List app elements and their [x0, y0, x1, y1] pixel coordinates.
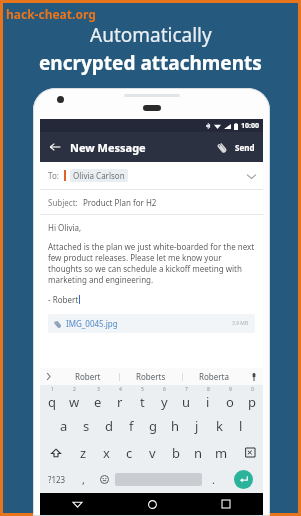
staticText: q — [48, 393, 56, 411]
staticText: k — [216, 417, 223, 435]
staticText: 7 — [185, 386, 188, 393]
button[interactable]: IMG_0045.jpg — [48, 314, 255, 333]
staticText: v — [149, 444, 156, 462]
button[interactable]: More suggestions — [40, 368, 56, 385]
button[interactable]: c — [118, 439, 141, 466]
button[interactable]: 2 — [63, 385, 86, 412]
button[interactable]: ?123 — [40, 466, 74, 493]
button[interactable]: g — [142, 412, 164, 439]
staticText: Olivia Carlson — [73, 170, 125, 181]
button[interactable]: . — [202, 466, 224, 493]
staticText: l — [239, 417, 243, 435]
staticText: - Robert — [48, 294, 79, 305]
button[interactable]: Enter — [224, 466, 263, 493]
button[interactable]: 6 — [153, 385, 175, 412]
button[interactable]: Expand recipients — [239, 164, 263, 188]
staticText: u — [182, 393, 191, 411]
staticText: ?123 — [48, 474, 66, 485]
staticText: h — [171, 417, 180, 435]
button[interactable]: a — [52, 412, 75, 439]
staticText: w — [69, 393, 80, 411]
staticText: f — [129, 417, 134, 435]
staticText: 10:00 — [241, 121, 259, 131]
button[interactable]: Back — [40, 132, 70, 162]
button[interactable]: Emoji — [93, 466, 115, 493]
staticText: a — [60, 417, 68, 435]
staticText: t — [140, 393, 145, 411]
button[interactable]: h — [164, 412, 186, 439]
staticText: 6 — [163, 386, 166, 393]
staticText: s — [83, 417, 90, 435]
staticText: Subject: — [48, 197, 78, 208]
staticText: 5 — [141, 386, 144, 393]
button[interactable]: 0 — [241, 385, 263, 412]
button[interactable]: Voice input — [245, 368, 263, 385]
button[interactable]: 8 — [197, 385, 219, 412]
button[interactable]: 4 — [109, 385, 131, 412]
staticText: o — [226, 393, 234, 411]
button[interactable]: , — [74, 466, 93, 493]
staticText: g — [149, 417, 157, 435]
button[interactable]: Subject: — [40, 190, 263, 214]
button[interactable]: 7 — [175, 385, 197, 412]
button[interactable]: 1 — [40, 385, 63, 412]
staticText: p — [248, 393, 256, 411]
button[interactable]: To: — [40, 162, 263, 189]
button[interactable]: f — [120, 412, 142, 439]
staticText: 1 — [51, 386, 54, 393]
button[interactable]: Robert — [56, 368, 119, 385]
button[interactable]: v — [141, 439, 164, 466]
staticText: x — [103, 444, 110, 462]
staticText: e — [94, 393, 102, 411]
staticText: Hi Olivia, — [48, 222, 82, 233]
staticText: 9 — [229, 386, 232, 393]
staticText: Automatically — [90, 22, 212, 48]
staticText: n — [194, 444, 203, 462]
button[interactable]: Attach file — [209, 134, 235, 160]
staticText: 3 — [97, 386, 100, 393]
staticText: j — [195, 417, 199, 435]
button[interactable]: z — [71, 439, 95, 466]
button[interactable]: m — [210, 439, 233, 466]
button[interactable]: k — [208, 412, 230, 439]
staticText: Roberts — [136, 371, 166, 382]
button[interactable]: Back — [40, 493, 115, 515]
button[interactable]: s — [75, 412, 98, 439]
staticText: d — [105, 417, 113, 435]
button[interactable]: b — [164, 439, 187, 466]
button[interactable]: d — [98, 412, 120, 439]
staticText: 2 — [73, 386, 76, 393]
staticText: encrypted attachments — [39, 50, 262, 76]
staticText: Roberta — [199, 371, 229, 382]
staticText: Product Plan for H2 — [83, 197, 157, 208]
staticText: Send — [235, 142, 255, 153]
staticText: y — [161, 393, 168, 411]
button[interactable]: Send — [235, 142, 255, 153]
staticText: . — [212, 472, 215, 487]
staticText: m — [215, 444, 228, 462]
button[interactable]: j — [186, 412, 208, 439]
button[interactable]: Backspace — [233, 439, 263, 466]
button[interactable]: Roberts — [120, 368, 182, 385]
button[interactable]: x — [95, 439, 118, 466]
staticText: New Message — [70, 140, 146, 155]
button[interactable]: 9 — [219, 385, 241, 412]
staticText: r — [117, 393, 123, 411]
button[interactable]: Roberta — [183, 368, 245, 385]
staticText: 0 — [251, 386, 254, 393]
staticText: z — [80, 444, 87, 462]
button[interactable]: Recents — [189, 493, 263, 515]
staticText: i — [206, 393, 210, 411]
button[interactable]: 3 — [86, 385, 109, 412]
button[interactable]: l — [230, 412, 252, 439]
button[interactable]: Shift — [40, 439, 71, 466]
button[interactable]: n — [187, 439, 210, 466]
staticText: 3.9 MB — [232, 320, 249, 327]
staticText: Robert — [75, 371, 101, 382]
staticText: IMG_0045.jpg — [66, 318, 118, 329]
staticText: 4 — [119, 386, 122, 393]
staticText: Attached is the plan we just white-board… — [48, 241, 255, 285]
button[interactable]: 5 — [131, 385, 153, 412]
button[interactable]: Home — [115, 493, 189, 515]
